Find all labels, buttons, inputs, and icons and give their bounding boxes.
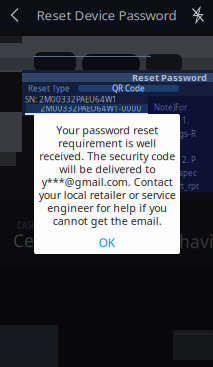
staticText: having xyxy=(179,230,213,253)
staticText: CASE 2 xyxy=(17,220,42,231)
staticText: Reset Device Password xyxy=(36,6,176,24)
staticText: to get spec xyxy=(154,168,197,178)
staticText: 2M00332PAEU64W1-0000 xyxy=(40,103,141,114)
staticText: Your password reset requirement is well … xyxy=(38,123,175,228)
button[interactable]: Back xyxy=(0,0,30,30)
staticText: support_rpt xyxy=(154,181,199,191)
staticText: SN: 2M00332PAEU64W1 xyxy=(25,94,117,105)
button[interactable]: OK xyxy=(34,230,180,254)
staticText: OK xyxy=(98,234,115,250)
staticText: Reset Type xyxy=(28,83,70,94)
staticText: Reset Password xyxy=(132,71,207,84)
button[interactable]: Toggle flash xyxy=(183,0,213,30)
staticText: Center xyxy=(13,229,68,252)
staticText: code. xyxy=(154,141,175,152)
staticText: -Settings-R xyxy=(154,128,196,139)
staticText: QR Code xyxy=(112,83,145,94)
staticText: Option 1. xyxy=(154,115,189,126)
staticText: Option 2. P xyxy=(154,154,196,165)
staticText: Note)For xyxy=(154,102,187,113)
